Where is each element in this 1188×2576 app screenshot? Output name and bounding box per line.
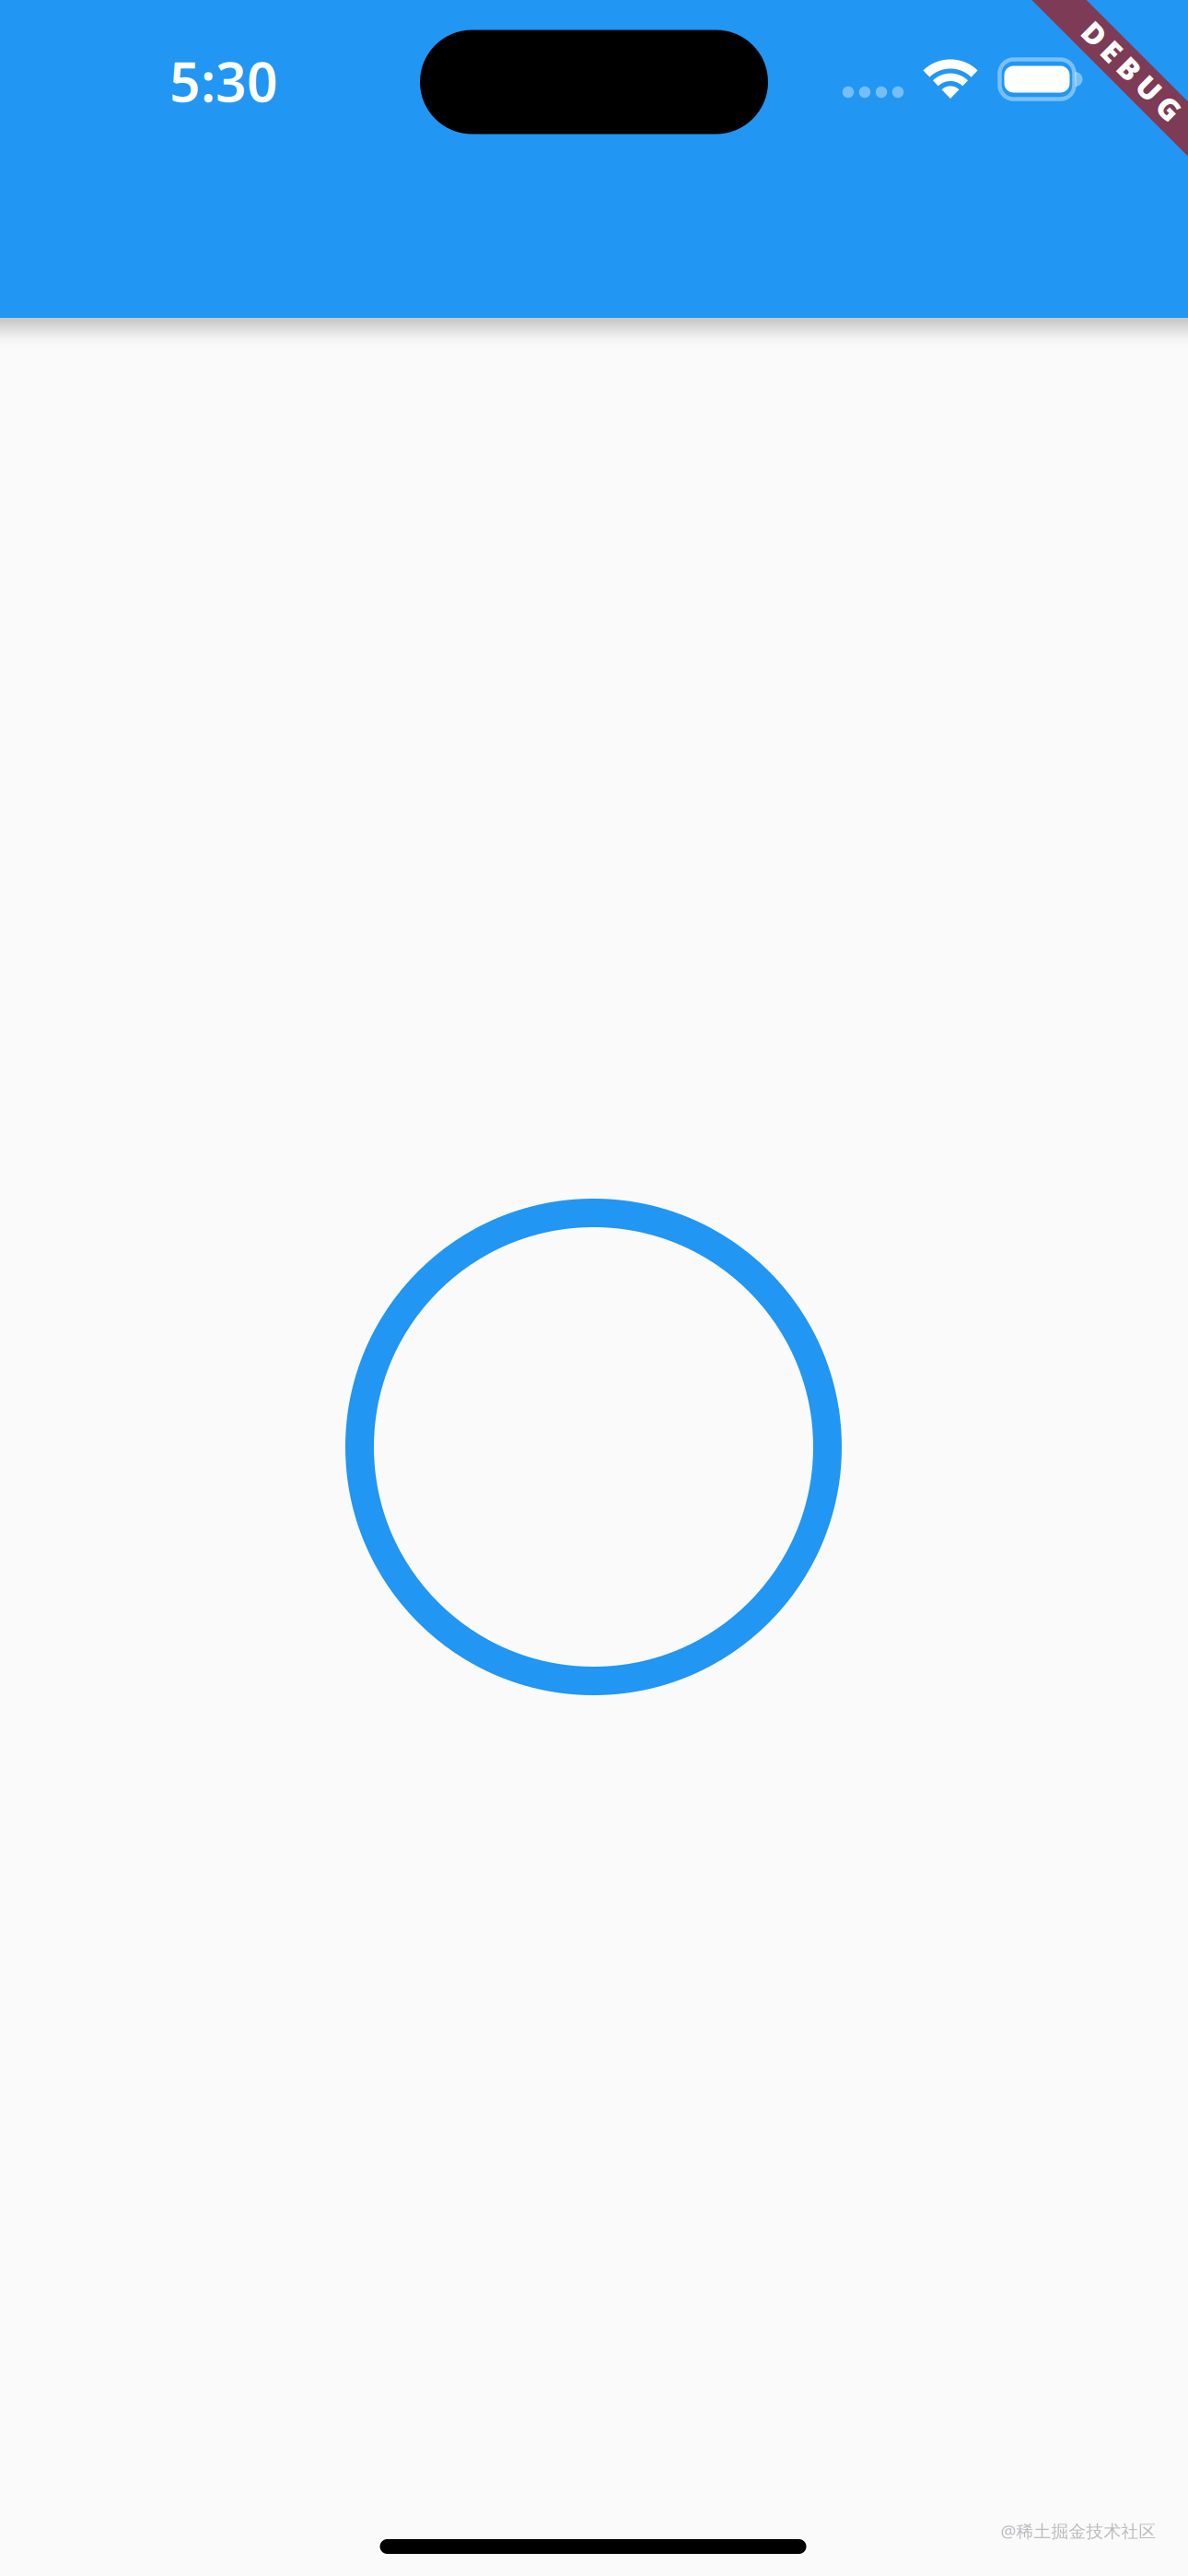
staticText: DEBUG [1061,67,1188,106]
staticText: @稀土掘金技术社区 [1001,2519,1156,2542]
staticText: 5:30 [169,45,278,117]
